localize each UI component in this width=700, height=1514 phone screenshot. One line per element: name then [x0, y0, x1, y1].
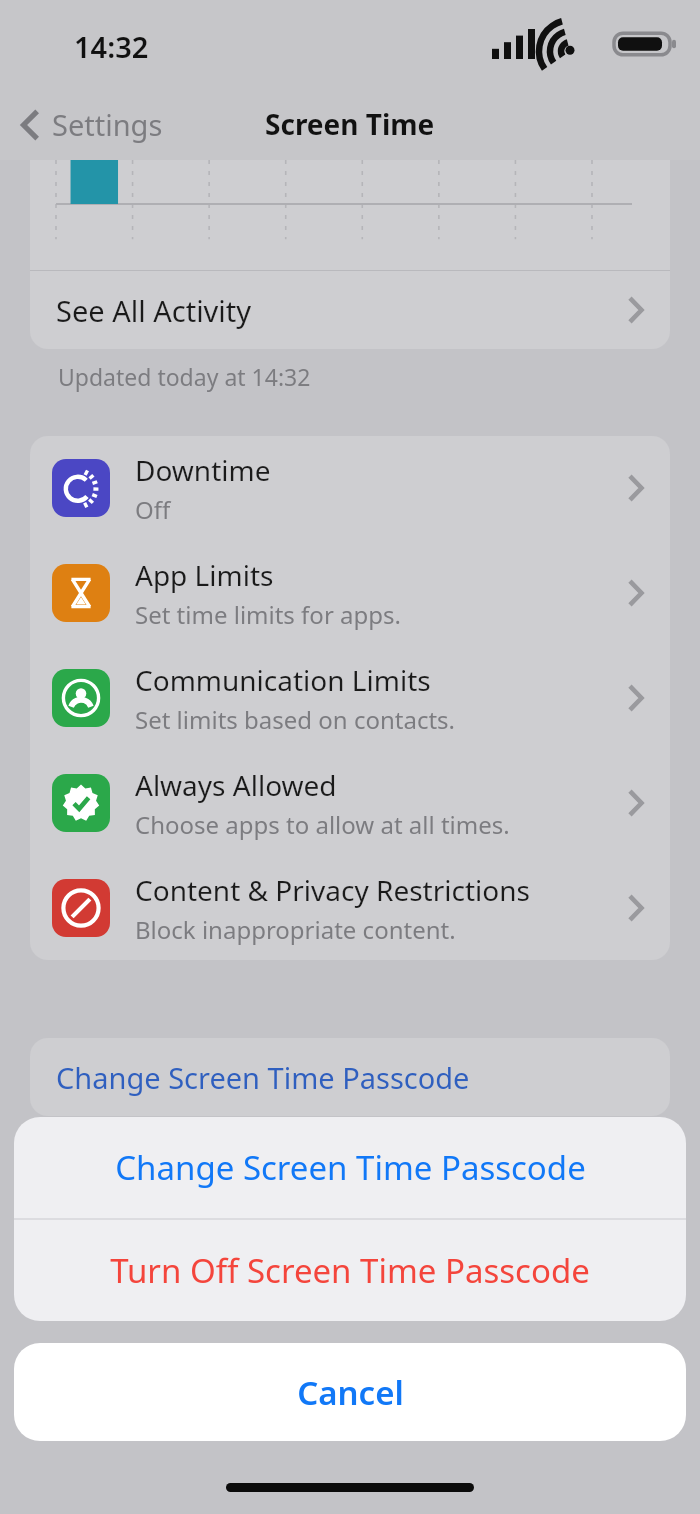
- staticText: Change Screen Time Passcode: [56, 1058, 470, 1097]
- staticText: Downtime: [135, 451, 271, 489]
- button[interactable]: Downtime: [30, 436, 670, 540]
- staticText: App Limits: [135, 556, 274, 594]
- staticText: Updated today at 14:32: [58, 361, 311, 392]
- staticText: Cancel: [297, 1370, 404, 1415]
- button[interactable]: Change Screen Time Passcode: [30, 1038, 670, 1116]
- button[interactable]: Change Screen Time Passcode: [14, 1117, 686, 1218]
- staticText: Set time limits for apps.: [135, 598, 401, 631]
- staticText: Off: [135, 493, 171, 526]
- staticText: 14:32: [74, 27, 149, 66]
- button[interactable]: App Limits: [30, 541, 670, 645]
- button[interactable]: Settings: [14, 97, 169, 152]
- button[interactable]: Communication Limits: [30, 646, 670, 750]
- staticText: Communication Limits: [135, 661, 431, 699]
- button[interactable]: Turn Off Screen Time Passcode: [14, 1220, 686, 1321]
- staticText: Turn Off Screen Time Passcode: [110, 1248, 590, 1293]
- staticText: Always Allowed: [135, 766, 337, 804]
- staticText: Change Screen Time Passcode: [115, 1145, 586, 1190]
- button[interactable]: Always Allowed: [30, 751, 670, 855]
- staticText: Block inappropriate content.: [135, 913, 456, 946]
- staticText: Content & Privacy Restrictions: [135, 871, 530, 909]
- staticText: Settings: [52, 105, 163, 144]
- button[interactable]: Content & Privacy Restrictions: [30, 856, 670, 960]
- staticText: Choose apps to allow at all times.: [135, 808, 510, 841]
- staticText: Screen Time: [265, 105, 435, 143]
- staticText: Set limits based on contacts.: [135, 703, 455, 736]
- staticText: See All Activity: [56, 291, 626, 330]
- button[interactable]: See All Activity: [30, 271, 670, 349]
- button[interactable]: Cancel: [14, 1343, 686, 1441]
